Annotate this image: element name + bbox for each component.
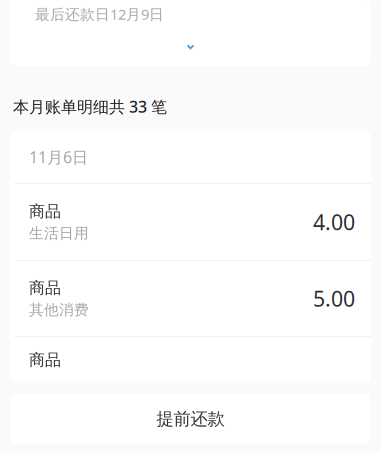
- button[interactable]: 商品: [10, 261, 371, 336]
- staticText: 商品: [29, 202, 61, 221]
- staticText: 商品: [29, 278, 61, 298]
- staticText: 提前还款: [156, 408, 224, 430]
- staticText: 生活日用: [29, 224, 89, 242]
- staticText: 本月账单明细共 33 笔: [13, 96, 167, 117]
- button[interactable]: 展开账单详情: [10, 28, 371, 66]
- staticText: 最后还款日12月9日: [35, 4, 164, 24]
- staticText: 商品: [29, 350, 61, 370]
- staticText: 11月6日: [29, 146, 88, 168]
- staticText: 4.00: [313, 208, 355, 236]
- staticText: 5.00: [313, 284, 355, 313]
- button[interactable]: 提前还款: [11, 394, 370, 444]
- button[interactable]: 商品: [10, 184, 371, 260]
- staticText: 其他消费: [29, 301, 89, 319]
- button[interactable]: 商品: [10, 337, 371, 383]
